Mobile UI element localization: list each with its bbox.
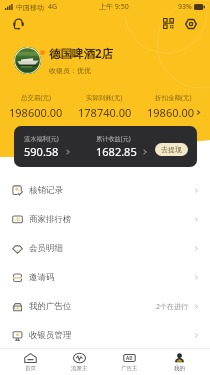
staticText: 198600.00 [9,105,63,120]
button[interactable]: 核销记录 [0,176,210,205]
button[interactable]: 首页 [6,349,55,375]
staticText: 19860.00 [147,105,194,120]
staticText: 中国移动 [16,3,44,12]
staticText: 德国啤酒2店 [49,46,114,62]
staticText: 收银员：优优 [49,66,91,75]
button[interactable]: AD [104,349,154,375]
button[interactable]: 折扣金额(元) [139,93,208,120]
staticText: 我的广告位 [29,301,72,312]
staticText: AD [126,355,133,361]
staticText: 累计收益(元) [96,134,131,142]
staticText: 首页 [25,365,36,372]
staticText: 2个在进行 [156,302,189,312]
staticText: 流量主 [71,365,88,372]
button[interactable]: 总交易(元) [2,93,70,120]
button[interactable]: Settings [185,18,197,30]
staticText: 上午 9:50 [99,2,129,12]
button[interactable]: 商家排行榜 [0,205,210,234]
button[interactable]: Scan QR code [163,18,174,29]
staticText: 折扣金额(元) [155,93,192,102]
staticText: 去提现 [161,145,182,154]
button[interactable]: 会员明细 [0,234,210,263]
staticText: 总交易(元) [21,93,51,102]
staticText: 邀请码 [29,272,55,283]
staticText: 商家排行榜 [29,214,72,225]
button[interactable]: 流水福利(元) [24,134,71,159]
button[interactable]: 我的广告位 [0,292,210,321]
staticText: 会员明细 [29,243,63,254]
staticText: 广告主 [121,365,138,372]
staticText: 1682.85 [96,144,137,159]
button[interactable]: 邀请码 [0,263,210,292]
button[interactable]: 实际到账(元) [70,93,139,120]
button[interactable]: Customer service [13,18,24,29]
staticText: 流水福利(元) [24,134,59,142]
staticText: 93% [178,2,192,12]
button[interactable]: 去提现 [155,143,188,156]
staticText: 我的 [174,365,185,372]
staticText: 实际到账(元) [86,93,123,102]
staticText: 收银员管理 [29,330,72,341]
staticText: 4G [48,2,58,12]
staticText: 核销记录 [29,185,63,196]
button[interactable]: 收银员管理 [0,321,210,350]
button[interactable]: 流量主 [55,349,104,375]
button[interactable]: 累计收益(元) [96,134,148,159]
button[interactable]: 我的 [154,349,204,375]
staticText: 178740.00 [78,105,132,120]
staticText: 590.58 [24,144,59,159]
